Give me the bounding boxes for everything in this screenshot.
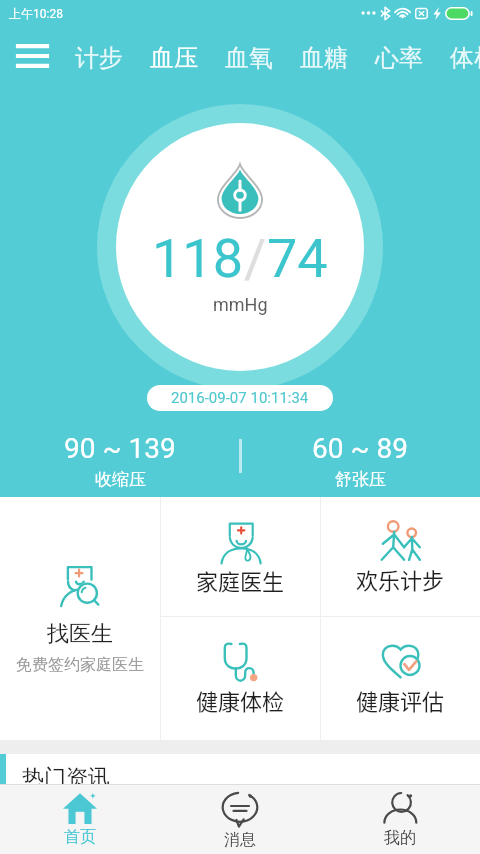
staticText: 60 ~ 89 [312,432,408,465]
staticText: 舒张压 [335,469,386,490]
staticText: 消息 [224,830,256,850]
staticText: mmHg [213,294,268,315]
staticText: 首页 [64,827,96,847]
staticText: 找医生 [47,620,113,648]
button[interactable]: 血压 [150,43,198,73]
button[interactable]: 消息 [160,785,320,854]
button[interactable]: 首页 [0,785,160,854]
staticText: 118 [152,227,244,290]
button[interactable]: 健康体检 [161,617,320,740]
staticText: 计步 [75,43,123,73]
staticText: 血糖 [300,43,348,73]
button[interactable]: Menu [4,38,60,74]
button[interactable]: 找医生 [0,497,160,740]
staticText: 家庭医生 [196,564,285,596]
button[interactable]: 健康评估 [321,617,480,740]
staticText: 热门资讯 [22,764,110,792]
staticText: 体检 [450,43,480,73]
staticText: 健康评估 [356,684,445,716]
staticText: 血压 [150,43,198,73]
staticText: 74 [267,227,328,290]
staticText: / [244,227,267,290]
button[interactable]: 血糖 [300,43,348,73]
staticText: 90 ~ 139 [64,432,176,465]
button[interactable]: 家庭医生 [161,497,320,616]
staticText: 血氧 [225,43,273,73]
staticText: 上午10:28 [9,6,63,21]
button[interactable]: 血氧 [225,43,273,73]
staticText: 免费签约家庭医生 [16,655,144,675]
staticText: 欢乐计步 [356,563,445,595]
button[interactable]: 计步 [75,43,123,73]
staticText: 2016-09-07 10:11:34 [171,389,309,407]
button[interactable]: 欢乐计步 [321,497,480,616]
button[interactable]: 体检 [450,43,480,73]
staticText: 健康体检 [196,684,285,716]
staticText: 心率 [375,43,423,73]
staticText: 收缩压 [95,469,146,490]
button[interactable]: 心率 [375,43,423,73]
button[interactable]: 我的 [320,785,480,854]
staticText: 我的 [384,828,416,848]
button[interactable]: 2016-09-07 10:11:34 [147,385,333,411]
